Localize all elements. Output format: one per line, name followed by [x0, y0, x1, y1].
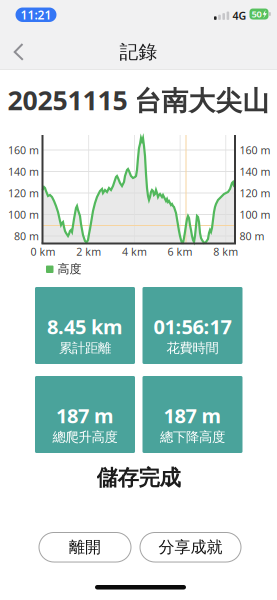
staticText: 160 m: [8, 143, 39, 157]
staticText: 187 m: [56, 402, 114, 429]
staticText: 140 m: [8, 164, 39, 179]
staticText: 花費時間: [166, 340, 218, 356]
button[interactable]: Back: [6, 40, 30, 64]
staticText: 累計距離: [59, 340, 111, 356]
staticText: 4 km: [122, 244, 147, 259]
staticText: 80 m: [239, 229, 264, 243]
staticText: 離開: [69, 537, 101, 557]
button[interactable]: 分享成就: [140, 532, 241, 562]
staticText: 0 km: [30, 244, 55, 259]
staticText: 記錄: [119, 40, 157, 63]
staticText: 160 m: [239, 143, 270, 157]
staticText: 2 km: [76, 244, 101, 259]
staticText: 11:21: [20, 7, 51, 23]
staticText: 4G: [232, 8, 246, 23]
staticText: 187 m: [163, 402, 221, 429]
staticText: 100 m: [239, 207, 270, 222]
staticText: 01:56:17: [153, 313, 231, 340]
staticText: 總下降高度: [160, 429, 225, 445]
staticText: 140 m: [239, 164, 270, 179]
staticText: 50: [251, 8, 261, 20]
staticText: 120 m: [239, 186, 270, 200]
staticText: 8.45 km: [47, 313, 123, 340]
button[interactable]: 離開: [39, 532, 131, 562]
staticText: 6 km: [168, 244, 193, 259]
staticText: 20251115 台南大尖山: [7, 82, 269, 118]
staticText: 100 m: [8, 207, 39, 222]
staticText: 總爬升高度: [52, 429, 117, 445]
staticText: 分享成就: [158, 537, 222, 557]
staticText: 80 m: [14, 229, 39, 243]
staticText: 120 m: [8, 186, 39, 200]
staticText: 高度: [57, 262, 81, 276]
staticText: 8 km: [213, 244, 238, 259]
staticText: 儲存完成: [96, 465, 180, 491]
